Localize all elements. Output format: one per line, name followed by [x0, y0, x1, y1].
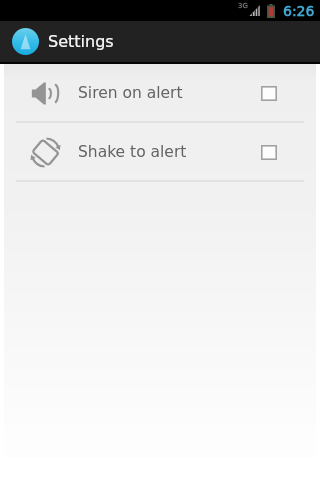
button[interactable]: Toggle	[256, 80, 282, 106]
button[interactable]: App icon, Settings	[12, 21, 320, 62]
staticText: Settings	[48, 32, 114, 51]
staticText: Shake to alert	[78, 143, 187, 161]
staticText: 3G	[238, 2, 248, 10]
button[interactable]: Siren on alert	[4, 64, 316, 121]
staticText: 6:26	[283, 3, 315, 19]
button[interactable]: Shake to alert	[4, 123, 316, 180]
staticText: Siren on alert	[78, 84, 183, 102]
button[interactable]: Toggle	[256, 139, 282, 165]
